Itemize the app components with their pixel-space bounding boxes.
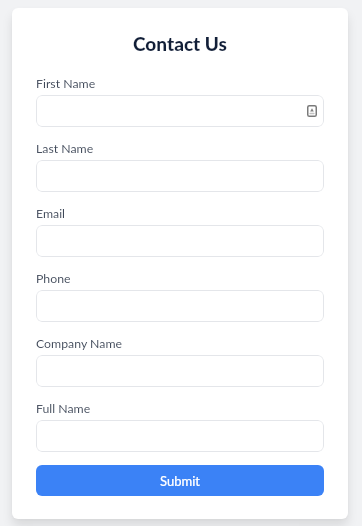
- staticText: Phone: [36, 271, 71, 286]
- button[interactable]: Submit: [36, 465, 324, 496]
- button[interactable]: [36, 225, 324, 257]
- button[interactable]: [36, 420, 324, 452]
- button[interactable]: [36, 355, 324, 387]
- staticText: Company Name: [36, 336, 122, 351]
- staticText: First Name: [36, 76, 96, 91]
- staticText: Submit: [160, 473, 200, 489]
- button[interactable]: [36, 290, 324, 322]
- staticText: Full Name: [36, 401, 91, 416]
- staticText: Email: [36, 206, 66, 221]
- button[interactable]: Autofill contact card: [36, 95, 324, 127]
- staticText: Last Name: [36, 141, 94, 156]
- button[interactable]: [36, 160, 324, 192]
- staticText: Contact Us: [36, 32, 324, 55]
- button[interactable]: Autofill contact card: [307, 105, 317, 117]
